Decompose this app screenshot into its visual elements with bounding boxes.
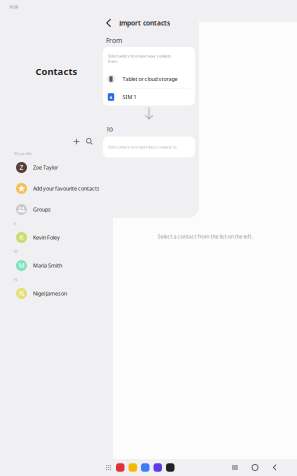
staticText: Select where to import your contacts fro… bbox=[108, 53, 171, 64]
staticText: M bbox=[14, 249, 18, 254]
button[interactable]: Back bbox=[103, 17, 115, 29]
staticText: To bbox=[106, 125, 113, 133]
staticText: My profile bbox=[14, 151, 32, 156]
staticText: Maria Smith bbox=[33, 262, 62, 269]
button[interactable]: Recents bbox=[225, 459, 245, 476]
button[interactable]: Back bbox=[265, 459, 285, 476]
button[interactable]: Add your favourite contacts bbox=[0, 178, 113, 199]
staticText: M bbox=[18, 261, 24, 270]
button[interactable]: App bbox=[116, 463, 124, 472]
button[interactable]: M bbox=[0, 255, 113, 276]
staticText: Tablet or cloud storage bbox=[122, 75, 177, 83]
staticText: Z bbox=[19, 163, 23, 172]
staticText: 10:08 bbox=[9, 4, 18, 10]
staticText: From bbox=[106, 36, 122, 45]
staticText: Zoe Taylor bbox=[33, 164, 58, 171]
button[interactable]: App bbox=[153, 463, 162, 472]
button[interactable]: Home bbox=[245, 459, 265, 476]
button[interactable]: Tablet or cloud storage bbox=[103, 70, 195, 88]
staticText: Select where to import these contacts to… bbox=[108, 144, 177, 150]
staticText: Add your favourite contacts bbox=[33, 185, 100, 192]
staticText: Kevin Foley bbox=[33, 234, 60, 241]
button[interactable]: App bbox=[166, 463, 174, 472]
staticText: N bbox=[19, 289, 24, 298]
staticText: Groups bbox=[33, 206, 51, 213]
button[interactable]: K bbox=[0, 227, 113, 248]
staticText: K bbox=[19, 233, 23, 242]
button[interactable]: Z bbox=[0, 157, 113, 178]
staticText: SIM 1 bbox=[122, 93, 136, 101]
button[interactable]: App bbox=[128, 463, 137, 472]
button[interactable]: App bbox=[141, 463, 149, 472]
button[interactable]: Add contact bbox=[70, 135, 83, 148]
button[interactable]: SIM 1 bbox=[103, 88, 195, 105]
staticText: N bbox=[14, 277, 17, 282]
staticText: Contacts bbox=[35, 65, 77, 78]
button[interactable]: Groups bbox=[0, 199, 113, 220]
staticText: Nigel Jameson bbox=[33, 290, 67, 297]
button[interactable]: Search bbox=[83, 135, 96, 148]
staticText: Import contacts bbox=[119, 19, 170, 27]
button[interactable]: N bbox=[0, 283, 113, 304]
staticText: Select a contact from the list on the le… bbox=[157, 233, 252, 240]
staticText: K bbox=[14, 221, 16, 226]
